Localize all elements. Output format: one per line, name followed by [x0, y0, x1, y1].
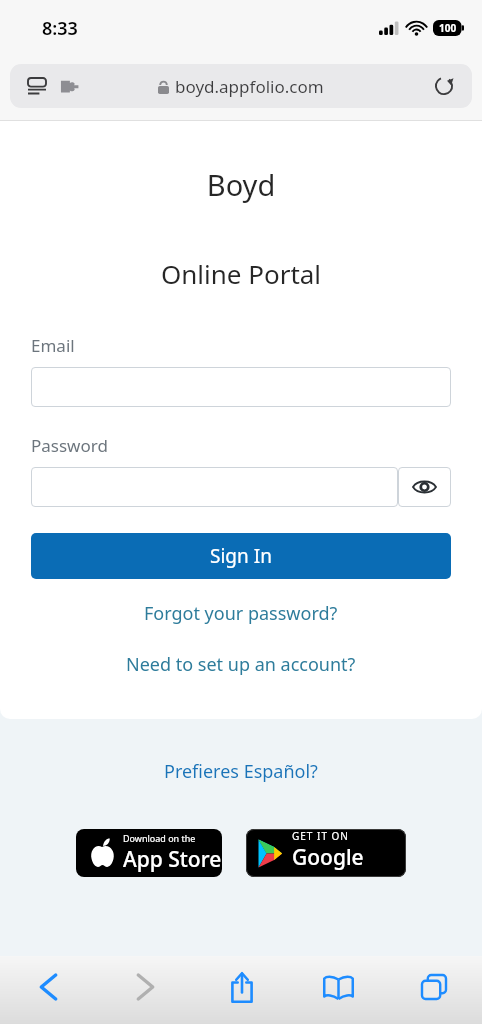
button[interactable]: Sign In — [31, 533, 451, 579]
staticText: Sign In — [210, 543, 272, 569]
button[interactable]: Forgot your password? — [0, 601, 482, 626]
staticText: Online Portal — [0, 256, 482, 291]
staticText: Prefieres Español? — [164, 759, 318, 784]
staticText: App Store — [123, 845, 222, 874]
button[interactable]: Bookmarks — [290, 956, 386, 1018]
button[interactable]: Show password — [398, 467, 451, 507]
button[interactable]: Forward — [97, 956, 194, 1018]
staticText: Password — [31, 434, 108, 457]
button[interactable]: Reload — [430, 72, 458, 100]
staticText: Email — [31, 334, 75, 357]
staticText: Google Play — [292, 843, 406, 877]
staticText: 8:33 — [42, 16, 78, 41]
button[interactable]: Prefieres Español? — [0, 759, 482, 784]
button[interactable]: Back — [0, 956, 97, 1018]
button[interactable]: Extensions — [56, 73, 82, 99]
staticText: boyd.appfolio.com — [175, 75, 324, 98]
button[interactable]: Download on the App Store — [76, 829, 222, 877]
button[interactable]: Tabs — [386, 956, 482, 1018]
staticText: Download on the — [123, 832, 196, 844]
staticText: Boyd — [0, 165, 482, 204]
button[interactable] — [31, 467, 398, 507]
staticText: Forgot your password? — [144, 601, 338, 626]
button[interactable]: Page settings — [24, 73, 50, 99]
staticText: GET IT ON — [292, 829, 349, 843]
button[interactable]: Share — [194, 956, 290, 1018]
staticText: 100 — [439, 21, 457, 35]
button[interactable]: Get it on Google Play — [246, 829, 406, 877]
button[interactable]: Need to set up an account? — [0, 652, 482, 677]
staticText: Need to set up an account? — [126, 652, 356, 677]
button[interactable] — [31, 367, 451, 407]
